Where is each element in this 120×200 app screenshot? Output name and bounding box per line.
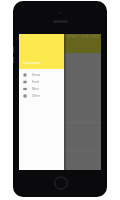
staticText: Mine	[32, 87, 39, 91]
staticText: Home	[32, 73, 41, 77]
button[interactable]: Other	[19, 92, 64, 99]
button[interactable]: Home	[19, 71, 64, 78]
other: Home	[54, 176, 68, 190]
staticText: Username	[23, 60, 41, 65]
button[interactable]: Feed	[19, 78, 64, 85]
button[interactable]: Mine	[19, 85, 64, 92]
staticText: Feed	[32, 80, 39, 84]
staticText: Other	[32, 94, 40, 98]
